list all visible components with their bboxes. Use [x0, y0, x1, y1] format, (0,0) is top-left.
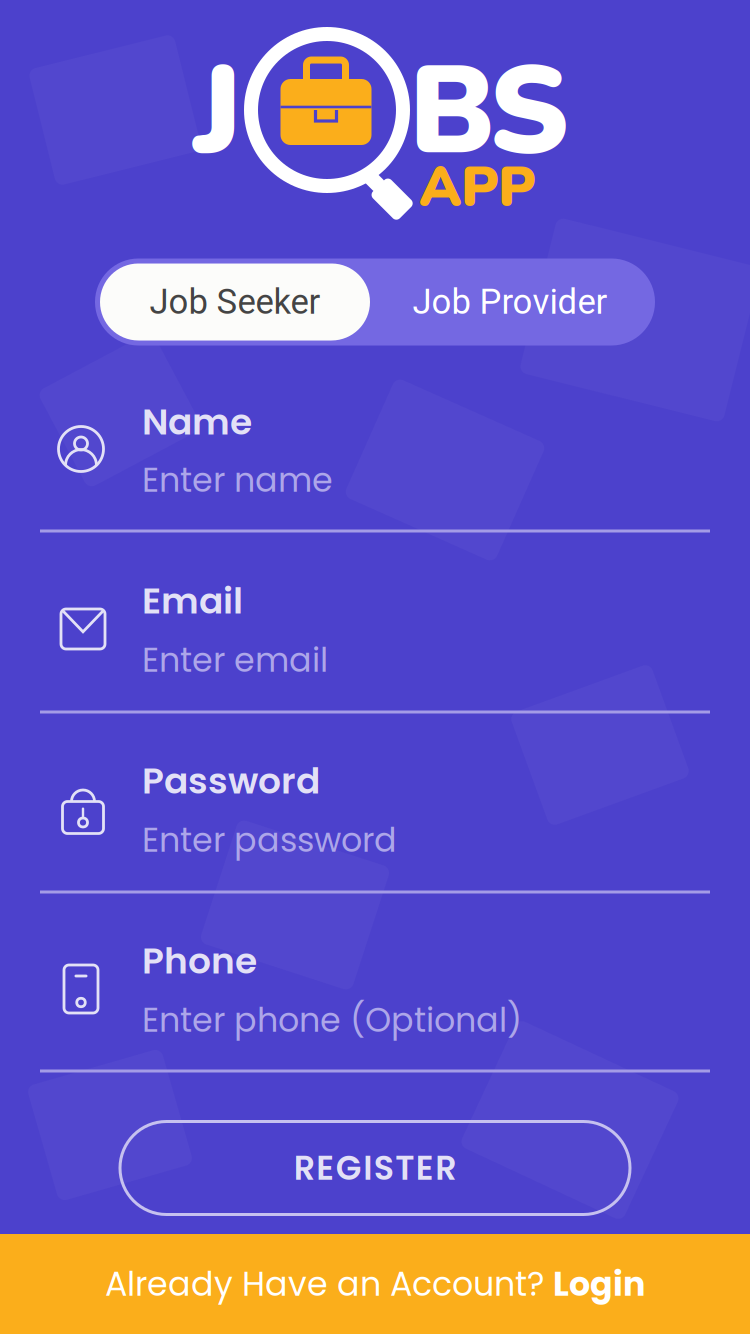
staticText: Job Seeker	[149, 282, 320, 322]
staticText: Enter name	[142, 457, 333, 503]
staticText: APP	[419, 149, 536, 225]
button[interactable]: Job Provider	[370, 263, 650, 340]
staticText: Enter phone (Optional)	[142, 997, 522, 1043]
staticText: J	[194, 28, 242, 196]
staticText: Enter password	[142, 817, 397, 863]
staticText: Name	[142, 397, 252, 447]
staticText: Email	[142, 576, 243, 626]
staticText: REGISTER	[294, 1145, 456, 1191]
button[interactable]: REGISTER	[120, 1121, 630, 1214]
button[interactable]: Already Have an Account?	[0, 1234, 750, 1334]
button[interactable]: Job Seeker	[100, 263, 370, 340]
staticText: Phone	[142, 936, 257, 986]
staticText: Already Have an Account?	[105, 1261, 553, 1307]
staticText: Password	[142, 756, 320, 806]
staticText: Enter email	[142, 637, 328, 683]
staticText: Login	[553, 1261, 645, 1307]
staticText: Job Provider	[412, 282, 607, 322]
staticText: BS	[409, 28, 569, 196]
